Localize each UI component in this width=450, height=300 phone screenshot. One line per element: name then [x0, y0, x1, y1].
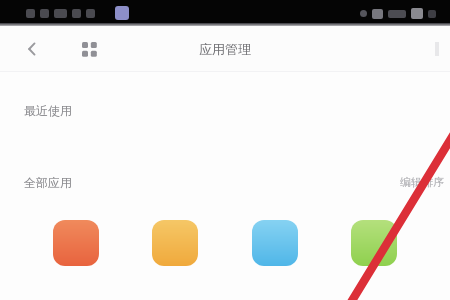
staticText: 最近使用: [24, 103, 72, 118]
button[interactable]: More options: [426, 38, 448, 60]
button[interactable]: App: [252, 220, 298, 266]
staticText: 应用管理: [199, 41, 251, 57]
staticText: 全部应用: [24, 175, 72, 190]
button[interactable]: Back: [18, 35, 46, 63]
button[interactable]: App: [351, 220, 397, 266]
button[interactable]: 编辑排序: [400, 175, 444, 189]
button[interactable]: App: [53, 220, 99, 266]
staticText: 编辑排序: [400, 175, 444, 189]
button[interactable]: Menu: [74, 34, 104, 64]
button[interactable]: App: [152, 220, 198, 266]
